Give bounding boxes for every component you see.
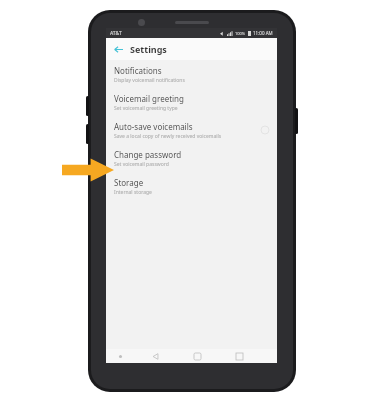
button[interactable]: Recents [218,349,260,363]
staticText: Set voicemail greeting type [114,105,178,112]
button[interactable]: Back [111,42,125,56]
staticText: Settings [130,43,167,55]
staticText: Storage [114,177,144,188]
button[interactable]: Change password [106,144,277,172]
staticText: Set voicemail password [114,161,169,168]
staticText: Auto-save voicemails [114,121,193,132]
button[interactable]: Keyboard [106,349,134,363]
staticText: Voicemail greeting [114,93,184,104]
staticText: Internal storage [114,189,152,196]
button[interactable]: Notifications [106,60,277,88]
button[interactable]: Storage [106,172,277,200]
staticText: Change password [114,149,182,160]
staticText: Display voicemail notifications [114,77,185,84]
button[interactable]: Back [134,349,176,363]
button[interactable]: Home [176,349,218,363]
staticText: Save a local copy of newly received voic… [114,133,222,140]
staticText: AT&T [110,30,122,37]
button[interactable]: Voicemail greeting [106,88,277,116]
staticText: 100% [235,31,246,36]
staticText: Notifications [114,65,162,76]
staticText: 11:00 AM [253,30,273,36]
button[interactable]: Auto-save voicemails [106,116,277,144]
